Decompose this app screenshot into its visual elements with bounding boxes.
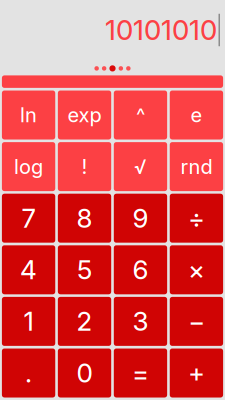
button[interactable]: 6 xyxy=(114,245,167,294)
button[interactable]: rnd xyxy=(170,142,223,191)
staticText: ÷ xyxy=(188,202,205,234)
button[interactable]: 9 xyxy=(114,194,167,243)
staticText: 4 xyxy=(20,254,37,286)
staticText: 9 xyxy=(132,202,148,234)
button[interactable]: √ xyxy=(114,142,167,191)
staticText: ln xyxy=(20,103,37,127)
staticText: ! xyxy=(81,154,87,179)
staticText: 7 xyxy=(22,202,36,234)
button[interactable]: ÷ xyxy=(170,194,223,243)
staticText: 5 xyxy=(77,254,92,286)
button[interactable]: 7 xyxy=(2,194,55,243)
staticText: e xyxy=(190,103,202,127)
staticText: + xyxy=(188,357,205,389)
button[interactable]: ! xyxy=(58,142,111,191)
staticText: × xyxy=(188,254,205,286)
button[interactable]: ^ xyxy=(114,90,167,139)
staticText: . xyxy=(25,357,32,389)
button[interactable]: ln xyxy=(2,90,55,139)
staticText: − xyxy=(188,306,205,337)
staticText: ^ xyxy=(136,103,145,127)
button[interactable]: + xyxy=(170,348,223,397)
staticText: 0 xyxy=(76,357,92,389)
staticText: 6 xyxy=(132,254,148,286)
button[interactable]: exp xyxy=(58,90,111,139)
button[interactable]: log xyxy=(2,142,55,191)
button[interactable]: 2 xyxy=(58,297,111,346)
staticText: 1 xyxy=(24,306,34,337)
staticText: 2 xyxy=(76,306,92,337)
button[interactable]: . xyxy=(2,348,55,397)
staticText: 8 xyxy=(76,202,92,234)
button[interactable]: 4 xyxy=(2,245,55,294)
staticText: rnd xyxy=(180,154,212,179)
button[interactable]: 0 xyxy=(58,348,111,397)
button[interactable]: × xyxy=(170,245,223,294)
staticText: log xyxy=(14,154,43,179)
button[interactable]: 1 xyxy=(2,297,55,346)
button[interactable]: 8 xyxy=(58,194,111,243)
button[interactable]: e xyxy=(170,90,223,139)
staticText: exp xyxy=(67,103,101,127)
staticText: = xyxy=(132,357,149,389)
button[interactable]: = xyxy=(114,348,167,397)
button[interactable]: 3 xyxy=(114,297,167,346)
staticText: 10101010 xyxy=(105,13,217,47)
staticText: 3 xyxy=(132,306,148,337)
button[interactable]: 5 xyxy=(58,245,111,294)
staticText: √ xyxy=(134,154,147,179)
button[interactable]: − xyxy=(170,297,223,346)
